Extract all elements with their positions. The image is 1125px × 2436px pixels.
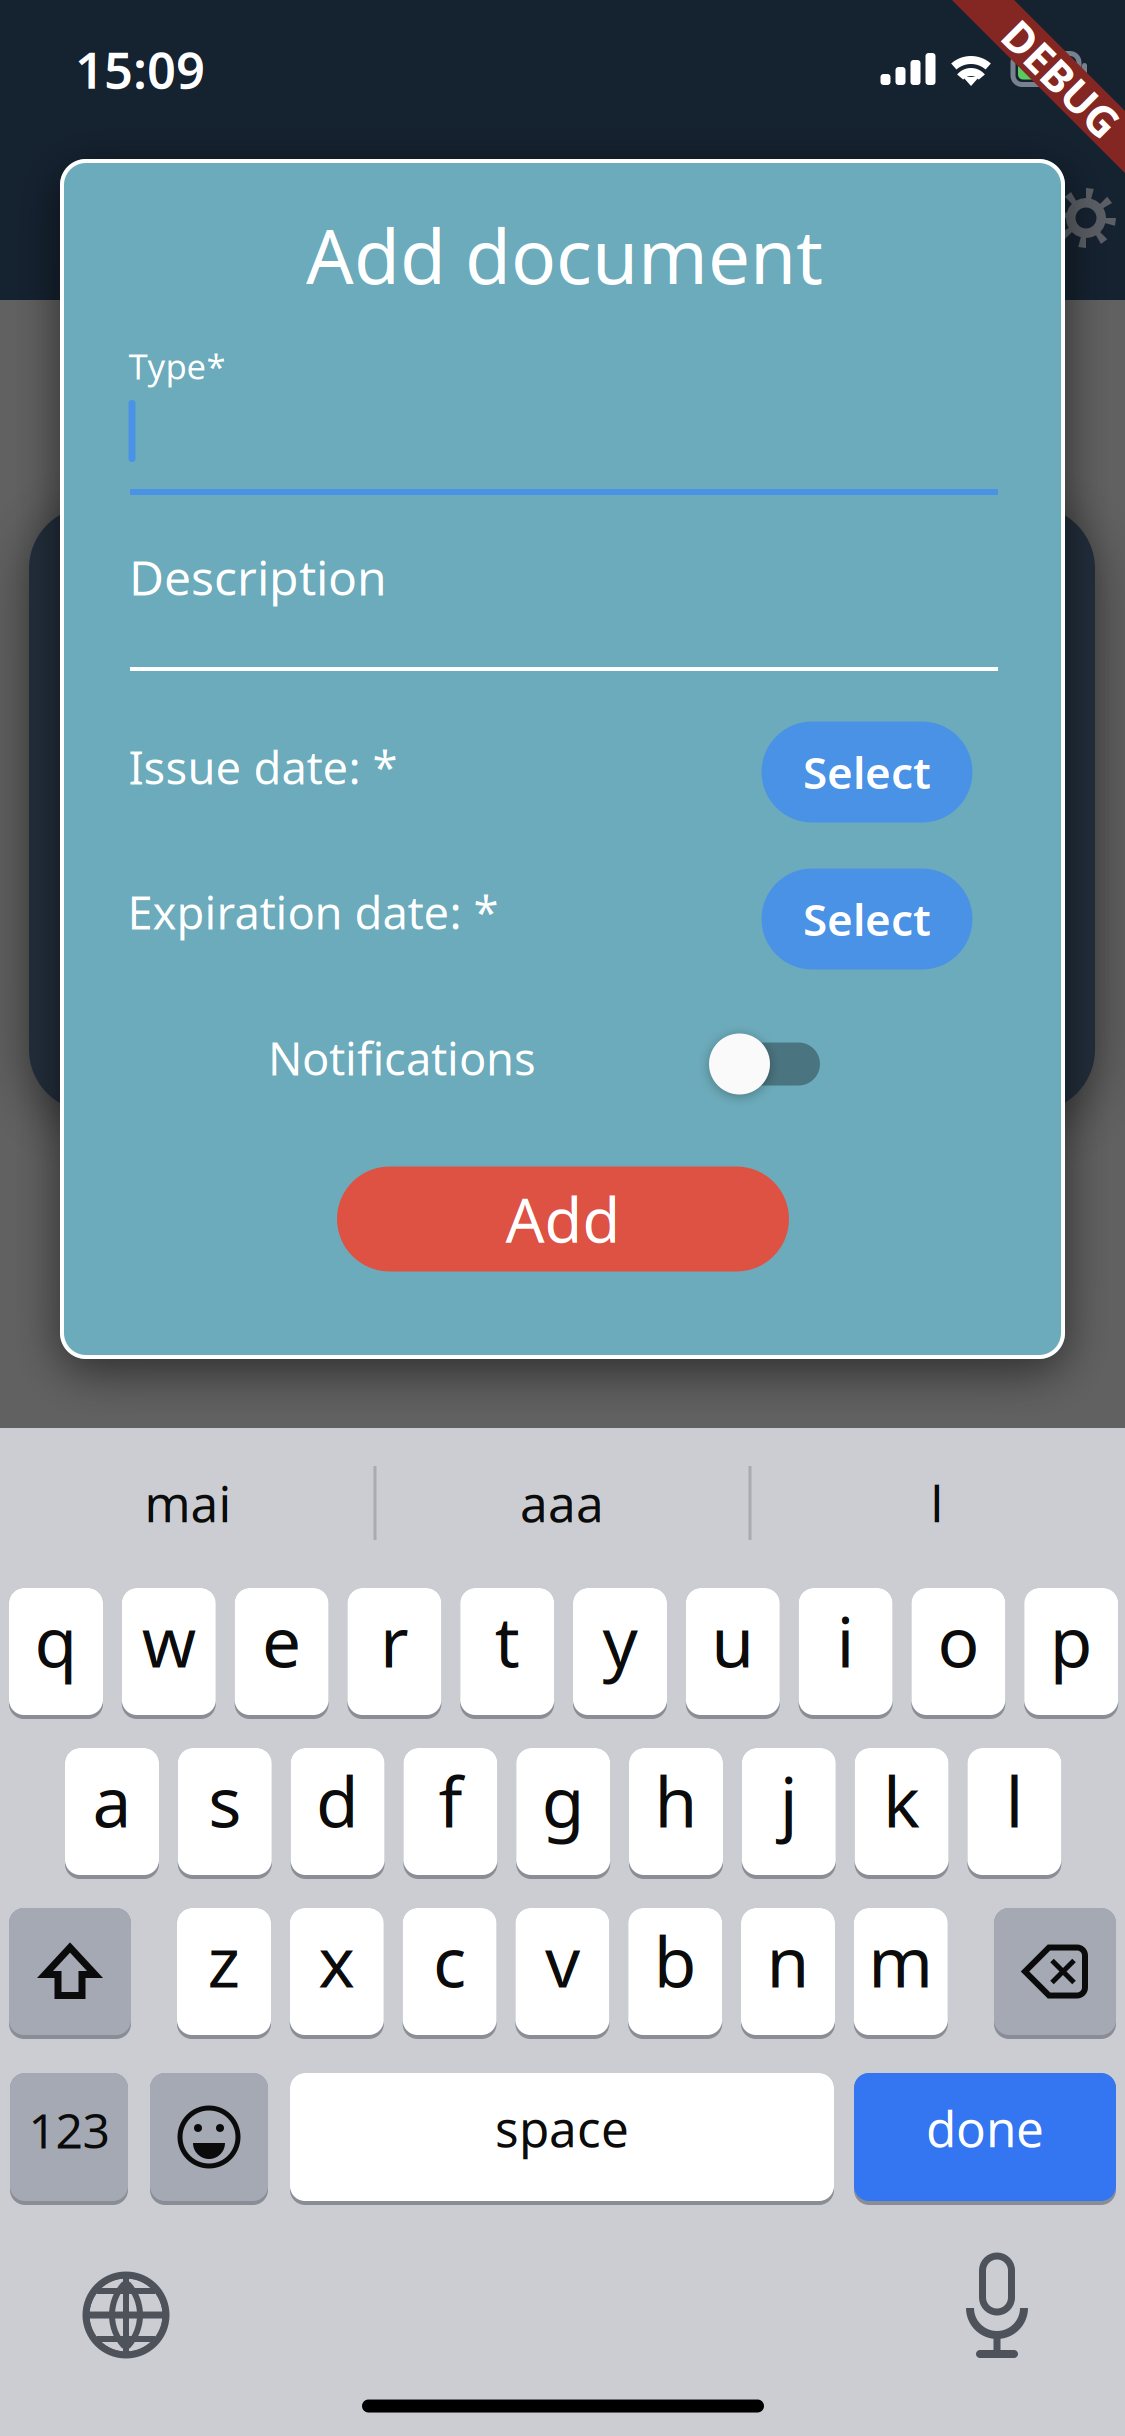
staticText: w [142, 1594, 196, 1687]
staticText: z [207, 1914, 240, 2007]
button[interactable]: d [291, 1748, 385, 1875]
staticText: u [711, 1594, 754, 1687]
button[interactable]: Shift [9, 1908, 131, 2035]
staticText: t [495, 1594, 520, 1687]
staticText: o [937, 1594, 979, 1687]
staticText: Select [803, 743, 931, 801]
button[interactable]: l [967, 1748, 1061, 1875]
staticText: l [1005, 1754, 1023, 1847]
staticText: f [438, 1754, 462, 1847]
button[interactable]: h [629, 1748, 723, 1875]
staticText: q [34, 1594, 77, 1687]
staticText: a [92, 1754, 131, 1847]
staticText: x [318, 1914, 355, 2007]
button[interactable]: Delete [994, 1908, 1116, 2035]
button[interactable]: o [911, 1588, 1005, 1715]
button[interactable]: s [178, 1748, 272, 1875]
staticText: d [316, 1754, 359, 1847]
staticText: Notifications [268, 1028, 536, 1088]
staticText: aaa [520, 1470, 604, 1536]
staticText: b [654, 1914, 697, 2007]
staticText: 123 [28, 2098, 109, 2162]
staticText: c [433, 1914, 466, 2007]
button[interactable]: p [1024, 1588, 1118, 1715]
button[interactable]: f [403, 1748, 497, 1875]
staticText: s [208, 1754, 241, 1847]
button[interactable]: j [742, 1748, 836, 1875]
button[interactable]: i [799, 1588, 893, 1715]
button[interactable]: m [854, 1908, 948, 2035]
button[interactable]: a [65, 1748, 159, 1875]
button[interactable]: Select [761, 721, 972, 822]
staticText: n [766, 1914, 809, 2007]
button[interactable]: b [628, 1908, 722, 2035]
button[interactable]: z [177, 1908, 271, 2035]
button[interactable]: r [347, 1588, 441, 1715]
staticText: l [930, 1470, 943, 1536]
staticText: g [542, 1754, 585, 1847]
staticText: r [380, 1594, 409, 1687]
button[interactable]: Add [337, 1166, 789, 1271]
button[interactable]: x [290, 1908, 384, 2035]
button[interactable]: Notifications [706, 1032, 818, 1096]
staticText: Add [505, 1178, 620, 1260]
button[interactable]: g [516, 1748, 610, 1875]
staticText: 15:09 [75, 35, 205, 103]
staticText: y [602, 1594, 637, 1687]
staticText: k [883, 1754, 920, 1847]
staticText: DEBUG [995, 35, 1125, 91]
button[interactable]: v [515, 1908, 609, 2035]
staticText: done [926, 2095, 1044, 2161]
staticText: Type* [128, 343, 225, 389]
staticText: i [837, 1594, 855, 1687]
staticText: Expiration date: * [127, 882, 498, 942]
button[interactable]: u [686, 1588, 780, 1715]
button[interactable]: k [855, 1748, 949, 1875]
button[interactable]: Dictate [937, 2246, 1057, 2366]
button[interactable]: done [854, 2073, 1116, 2201]
button[interactable]: y [573, 1588, 667, 1715]
button[interactable]: c [403, 1908, 497, 2035]
staticText: p [1050, 1594, 1093, 1687]
staticText: Description [129, 545, 387, 609]
staticText: h [654, 1754, 697, 1847]
button[interactable]: space [290, 2073, 834, 2201]
staticText: Select [803, 890, 931, 948]
button[interactable]: q [9, 1588, 103, 1715]
button[interactable]: Next keyboard [66, 2255, 186, 2375]
button[interactable]: l [787, 1448, 1087, 1558]
button[interactable]: t [460, 1588, 554, 1715]
staticText: v [545, 1914, 580, 2007]
staticText: m [868, 1914, 933, 2007]
button[interactable]: Select [761, 868, 972, 969]
button[interactable]: Emoji [150, 2073, 268, 2201]
button[interactable]: n [741, 1908, 835, 2035]
button[interactable]: w [122, 1588, 216, 1715]
button[interactable]: aaa [412, 1448, 712, 1558]
button[interactable]: Numbers [10, 2073, 128, 2201]
staticText: Add document [306, 205, 823, 305]
staticText: space [495, 2095, 629, 2161]
button[interactable]: e [235, 1588, 329, 1715]
staticText: e [262, 1594, 301, 1687]
staticText: mai [144, 1470, 231, 1536]
staticText: j [780, 1754, 798, 1847]
staticText: Issue date: * [128, 737, 397, 797]
button[interactable]: mai [38, 1448, 338, 1558]
